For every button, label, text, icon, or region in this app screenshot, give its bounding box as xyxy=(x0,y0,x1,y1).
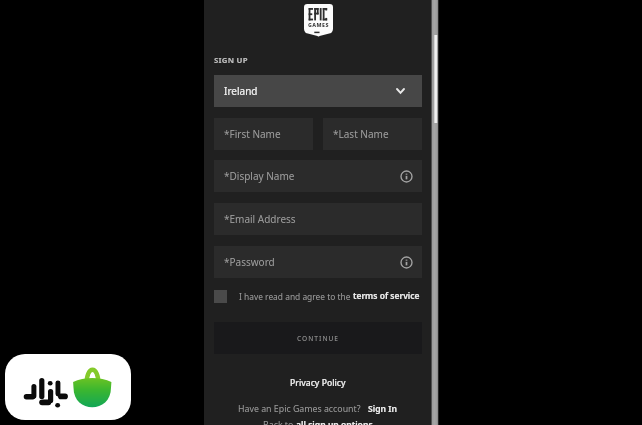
staticText: Back to xyxy=(263,419,296,425)
button[interactable]: *Password xyxy=(214,246,422,278)
button[interactable]: Ireland xyxy=(214,75,422,107)
staticText: I have read and agree to the xyxy=(239,291,353,302)
other: More information xyxy=(400,256,413,269)
other: More information xyxy=(400,170,413,183)
staticText: Privacy Policy xyxy=(290,377,346,389)
staticText: *Display Name xyxy=(224,169,295,183)
staticText: CONTINUE xyxy=(297,334,340,343)
button[interactable]: *Last Name xyxy=(323,118,422,150)
button[interactable]: *First Name xyxy=(214,118,313,150)
staticText: *Password xyxy=(224,255,275,269)
staticText: *Email Address xyxy=(224,212,296,226)
staticText: Sign In xyxy=(368,403,397,415)
staticText: terms of service xyxy=(353,290,420,302)
button[interactable]: *Display Name xyxy=(214,160,422,192)
staticText: Ireland xyxy=(224,84,258,98)
staticText: all sign up options xyxy=(296,419,373,425)
other: Open country list xyxy=(396,88,405,94)
staticText: *Last Name xyxy=(333,127,389,141)
button[interactable]: Sign In xyxy=(368,403,397,415)
other: Cafe Bazaar xyxy=(5,354,131,420)
button[interactable]: I have read and agree to the xyxy=(214,288,422,304)
staticText: GAMES xyxy=(308,21,329,28)
button[interactable]: Privacy Policy xyxy=(290,377,346,389)
button[interactable]: CONTINUE xyxy=(214,322,422,354)
staticText: Have an Epic Games account? xyxy=(238,403,361,415)
button[interactable]: *Email Address xyxy=(214,203,422,235)
button[interactable]: all sign up options xyxy=(296,419,373,425)
staticText: *First Name xyxy=(224,127,281,141)
staticText: SIGN UP xyxy=(214,55,248,66)
